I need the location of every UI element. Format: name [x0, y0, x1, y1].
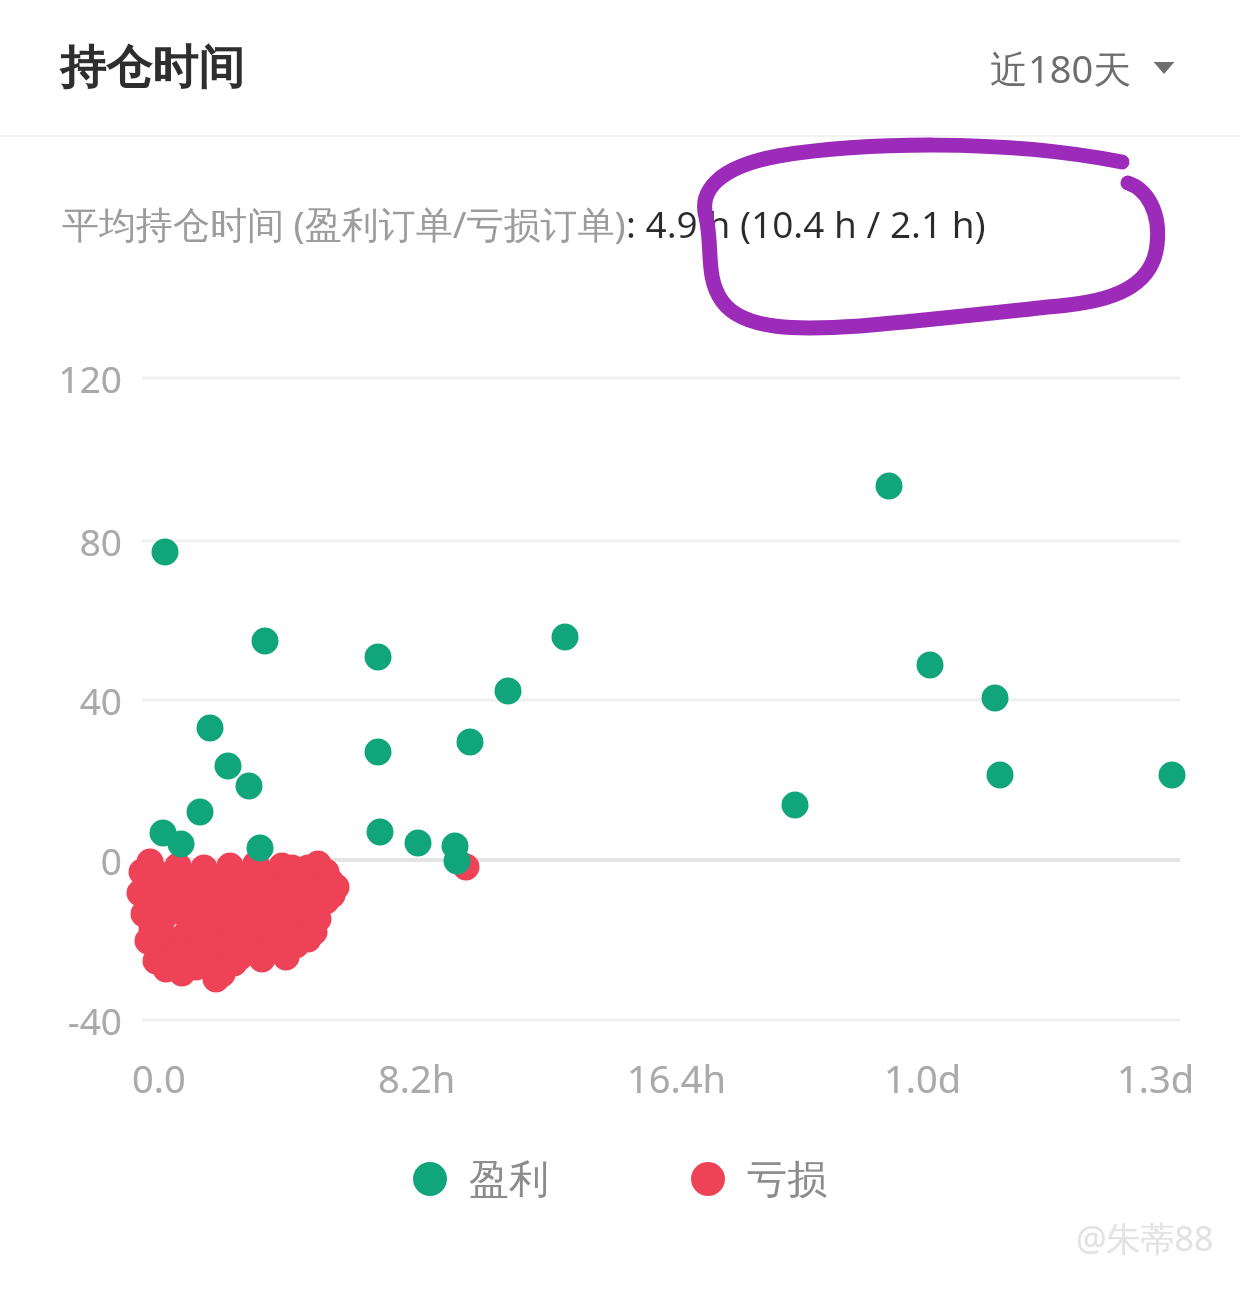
staticText: 持仓时间: [60, 39, 244, 97]
staticText: @朱蒂88: [1076, 1215, 1214, 1261]
staticText: 40: [79, 675, 122, 725]
other: Select time range: [1150, 54, 1178, 82]
staticText: 1.3d: [1117, 1052, 1195, 1104]
staticText: 近180天: [990, 42, 1132, 94]
staticText: -40: [67, 995, 122, 1045]
staticText: 120: [58, 353, 122, 403]
staticText: 亏损: [747, 1154, 827, 1204]
staticText: 80: [79, 516, 122, 566]
staticText: 16.4h: [627, 1052, 726, 1104]
staticText: 8.2h: [378, 1052, 456, 1104]
staticText: 盈利: [469, 1154, 549, 1204]
button[interactable]: 亏损: [685, 1148, 833, 1210]
staticText: 平均持仓时间 (盈利订单/亏损订单): [62, 198, 626, 249]
button[interactable]: 近180天: [984, 36, 1184, 100]
button[interactable]: 盈利: [407, 1148, 555, 1210]
staticText: 1.0d: [884, 1052, 962, 1104]
staticText: : 4.9 h (10.4 h / 2.1 h): [626, 198, 986, 248]
staticText: 0.0: [132, 1052, 186, 1104]
staticText: 0: [100, 835, 122, 885]
